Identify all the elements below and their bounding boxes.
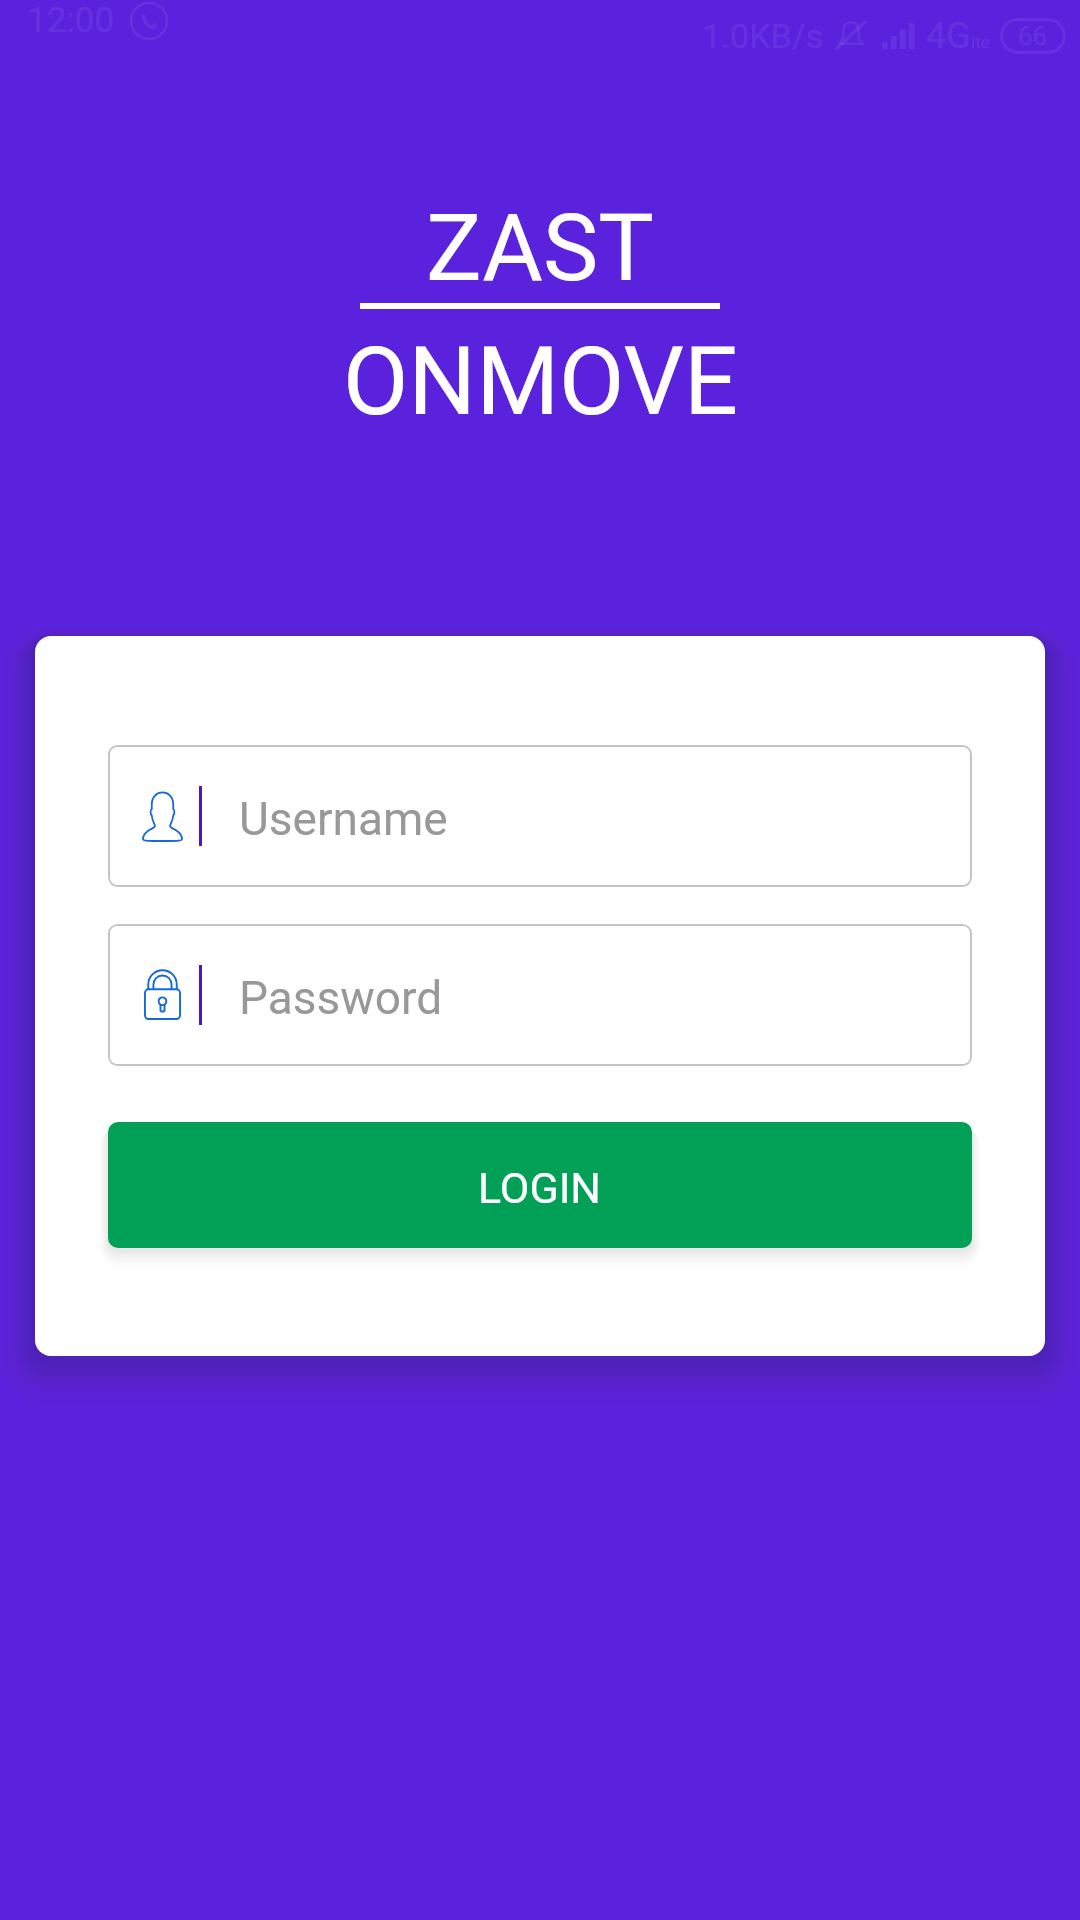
button[interactable]: Password bbox=[108, 924, 972, 1066]
staticText: 4G bbox=[926, 15, 971, 57]
other: User account bbox=[142, 791, 182, 841]
staticText: 1.0KB/s bbox=[702, 16, 824, 56]
staticText: ONMOVE bbox=[343, 326, 738, 437]
staticText: Password bbox=[239, 971, 443, 1025]
staticText: Username bbox=[239, 792, 448, 846]
button[interactable]: LOGIN bbox=[108, 1122, 972, 1248]
staticText: ZAST bbox=[426, 194, 654, 303]
staticText: LOGIN bbox=[478, 1163, 602, 1213]
staticText: 12:00 bbox=[27, 0, 115, 41]
staticText: 66 bbox=[1018, 21, 1048, 51]
other: Password bbox=[142, 970, 182, 1020]
staticText: lte bbox=[971, 32, 990, 52]
button[interactable]: User account bbox=[108, 745, 972, 887]
